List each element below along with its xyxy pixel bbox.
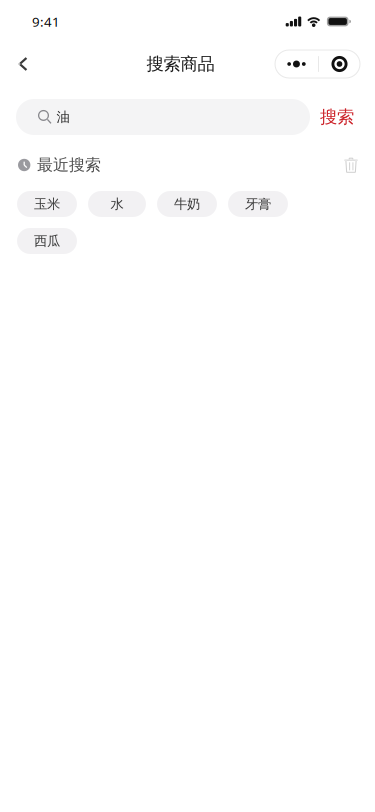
staticText: 牛奶 <box>174 196 200 212</box>
staticText: 西瓜 <box>34 233 60 249</box>
staticText: 搜索 <box>320 106 354 128</box>
staticText: 最近搜索 <box>37 155 101 175</box>
staticText: 9:41 <box>32 13 60 30</box>
button[interactable]: 西瓜 <box>17 228 77 254</box>
button[interactable]: 更多 <box>275 50 360 78</box>
button[interactable]: 牙膏 <box>228 191 288 217</box>
button[interactable]: 搜索 <box>310 99 375 135</box>
staticText: 水 <box>110 196 123 212</box>
button[interactable]: 牛奶 <box>157 191 217 217</box>
staticText: 牙膏 <box>245 196 271 212</box>
staticText: 搜索商品 <box>146 53 214 75</box>
button[interactable]: 水 <box>88 191 146 217</box>
button[interactable]: 玉米 <box>17 191 77 217</box>
staticText: 油 <box>57 109 70 125</box>
button[interactable]: 返回 <box>8 50 38 78</box>
staticText: 玉米 <box>34 196 60 212</box>
button[interactable]: 清除搜索历史 <box>336 152 366 178</box>
